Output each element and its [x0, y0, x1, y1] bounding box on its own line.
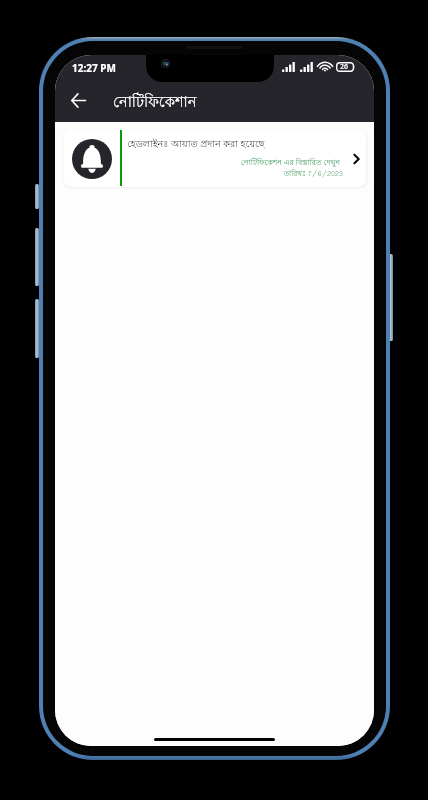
staticText: হেডলাইনঃ আয়াত প্রদান করা হয়েছে	[127, 138, 265, 151]
staticText: 12:27 PM	[72, 61, 116, 75]
button[interactable]: হেডলাইনঃ আয়াত প্রদান করা হয়েছে	[64, 129, 366, 187]
staticText: নোটিফিকেশন এর বিস্তারিত দেখুন	[64, 158, 340, 169]
staticText: তারিখঃ 7/6/2023	[64, 169, 343, 179]
button[interactable]: Back	[62, 84, 94, 116]
staticText: 26	[340, 62, 349, 72]
staticText: নোটিফিকেশান	[113, 93, 197, 114]
